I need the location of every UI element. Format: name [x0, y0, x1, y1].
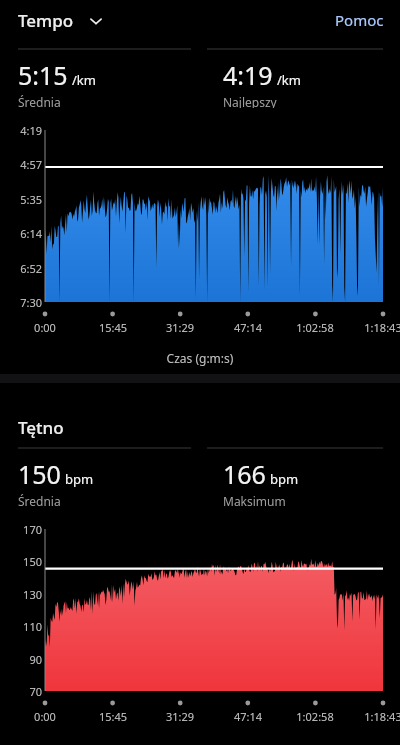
staticText: /km	[277, 71, 301, 89]
staticText: 1:02:58	[285, 709, 345, 724]
staticText: 170	[0, 522, 42, 537]
staticText: 1:18:43	[353, 709, 400, 724]
staticText: 31:29	[150, 709, 210, 724]
staticText: 4:57	[0, 157, 42, 172]
staticText: 110	[0, 619, 42, 634]
staticText: /km	[72, 71, 96, 89]
staticText: 47:14	[218, 709, 278, 724]
staticText: 0:00	[15, 320, 75, 335]
staticText: Najlepszy	[223, 94, 277, 108]
staticText: 4:19	[0, 123, 42, 138]
staticText: 15:45	[83, 320, 143, 335]
staticText: Czas (g:m:s)	[0, 350, 400, 366]
button[interactable]: Tempo	[0, 9, 110, 32]
staticText: 70	[0, 684, 42, 699]
staticText: 5:15	[18, 58, 68, 92]
staticText: 5:35	[0, 192, 42, 207]
staticText: bpm	[65, 470, 94, 488]
staticText: 0:00	[15, 709, 75, 724]
staticText: 90	[0, 652, 42, 667]
staticText: Tempo	[18, 9, 74, 32]
button[interactable]: Pomoc	[319, 6, 400, 34]
staticText: bpm	[270, 470, 299, 488]
other: Expand	[88, 13, 104, 29]
staticText: 130	[0, 587, 42, 602]
staticText: 15:45	[83, 709, 143, 724]
staticText: 1:02:58	[285, 320, 345, 335]
staticText: 4:19	[223, 58, 273, 92]
staticText: Średnia	[18, 493, 61, 507]
staticText: Pomoc	[335, 10, 384, 30]
staticText: 150	[0, 554, 42, 569]
staticText: Średnia	[18, 94, 61, 108]
staticText: 166	[223, 457, 266, 491]
staticText: 47:14	[218, 320, 278, 335]
staticText: 31:29	[150, 320, 210, 335]
staticText: 150	[18, 457, 61, 491]
staticText: 6:52	[0, 261, 42, 276]
button[interactable]: Tętno	[0, 416, 70, 439]
staticText: 7:30	[0, 295, 42, 310]
staticText: 6:14	[0, 226, 42, 241]
staticText: 1:18:43	[353, 320, 400, 335]
staticText: Tętno	[18, 416, 64, 439]
staticText: Maksimum	[223, 493, 286, 507]
